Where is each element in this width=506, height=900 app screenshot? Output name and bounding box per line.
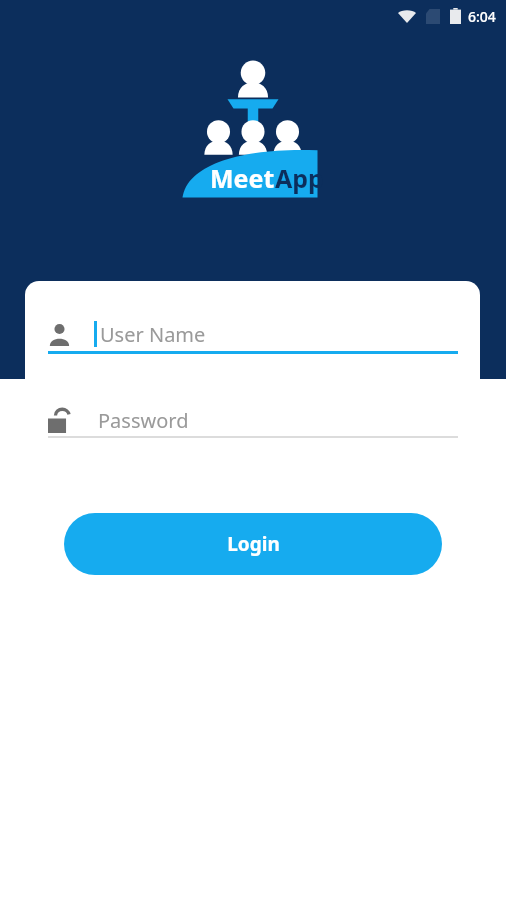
staticText: 6:04 (468, 7, 496, 26)
button[interactable]: Password (48, 399, 458, 441)
staticText: App (275, 161, 324, 195)
staticText: Meet (210, 161, 275, 195)
staticText: User Name (100, 321, 206, 348)
button[interactable]: User (48, 313, 458, 355)
staticText: Password (98, 407, 189, 434)
button[interactable]: Login (64, 513, 442, 575)
other: User (48, 323, 71, 346)
staticText: Login (227, 531, 280, 557)
other: Password (48, 408, 70, 433)
